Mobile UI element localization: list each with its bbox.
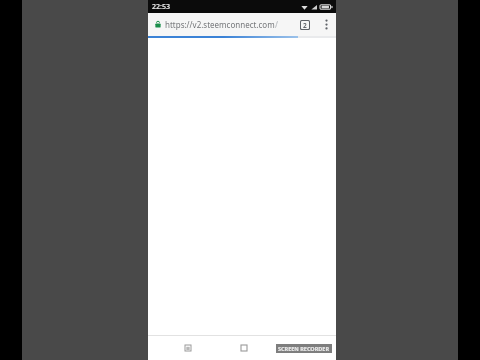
button[interactable]: Tabs, 2 open bbox=[293, 13, 316, 36]
staticText: 22:53 bbox=[152, 2, 170, 12]
button[interactable]: Recent apps bbox=[174, 336, 202, 360]
staticText: /sign bbox=[275, 19, 289, 30]
staticText: SCREEN RECORDER bbox=[278, 345, 330, 352]
button[interactable]: Home bbox=[230, 336, 258, 360]
button[interactable]: More options bbox=[316, 13, 336, 36]
staticText: https://v2.steemconnect.com bbox=[165, 19, 275, 30]
staticText: 2 bbox=[303, 21, 307, 29]
button[interactable]: https://v2.steemconnect.com bbox=[148, 13, 293, 36]
